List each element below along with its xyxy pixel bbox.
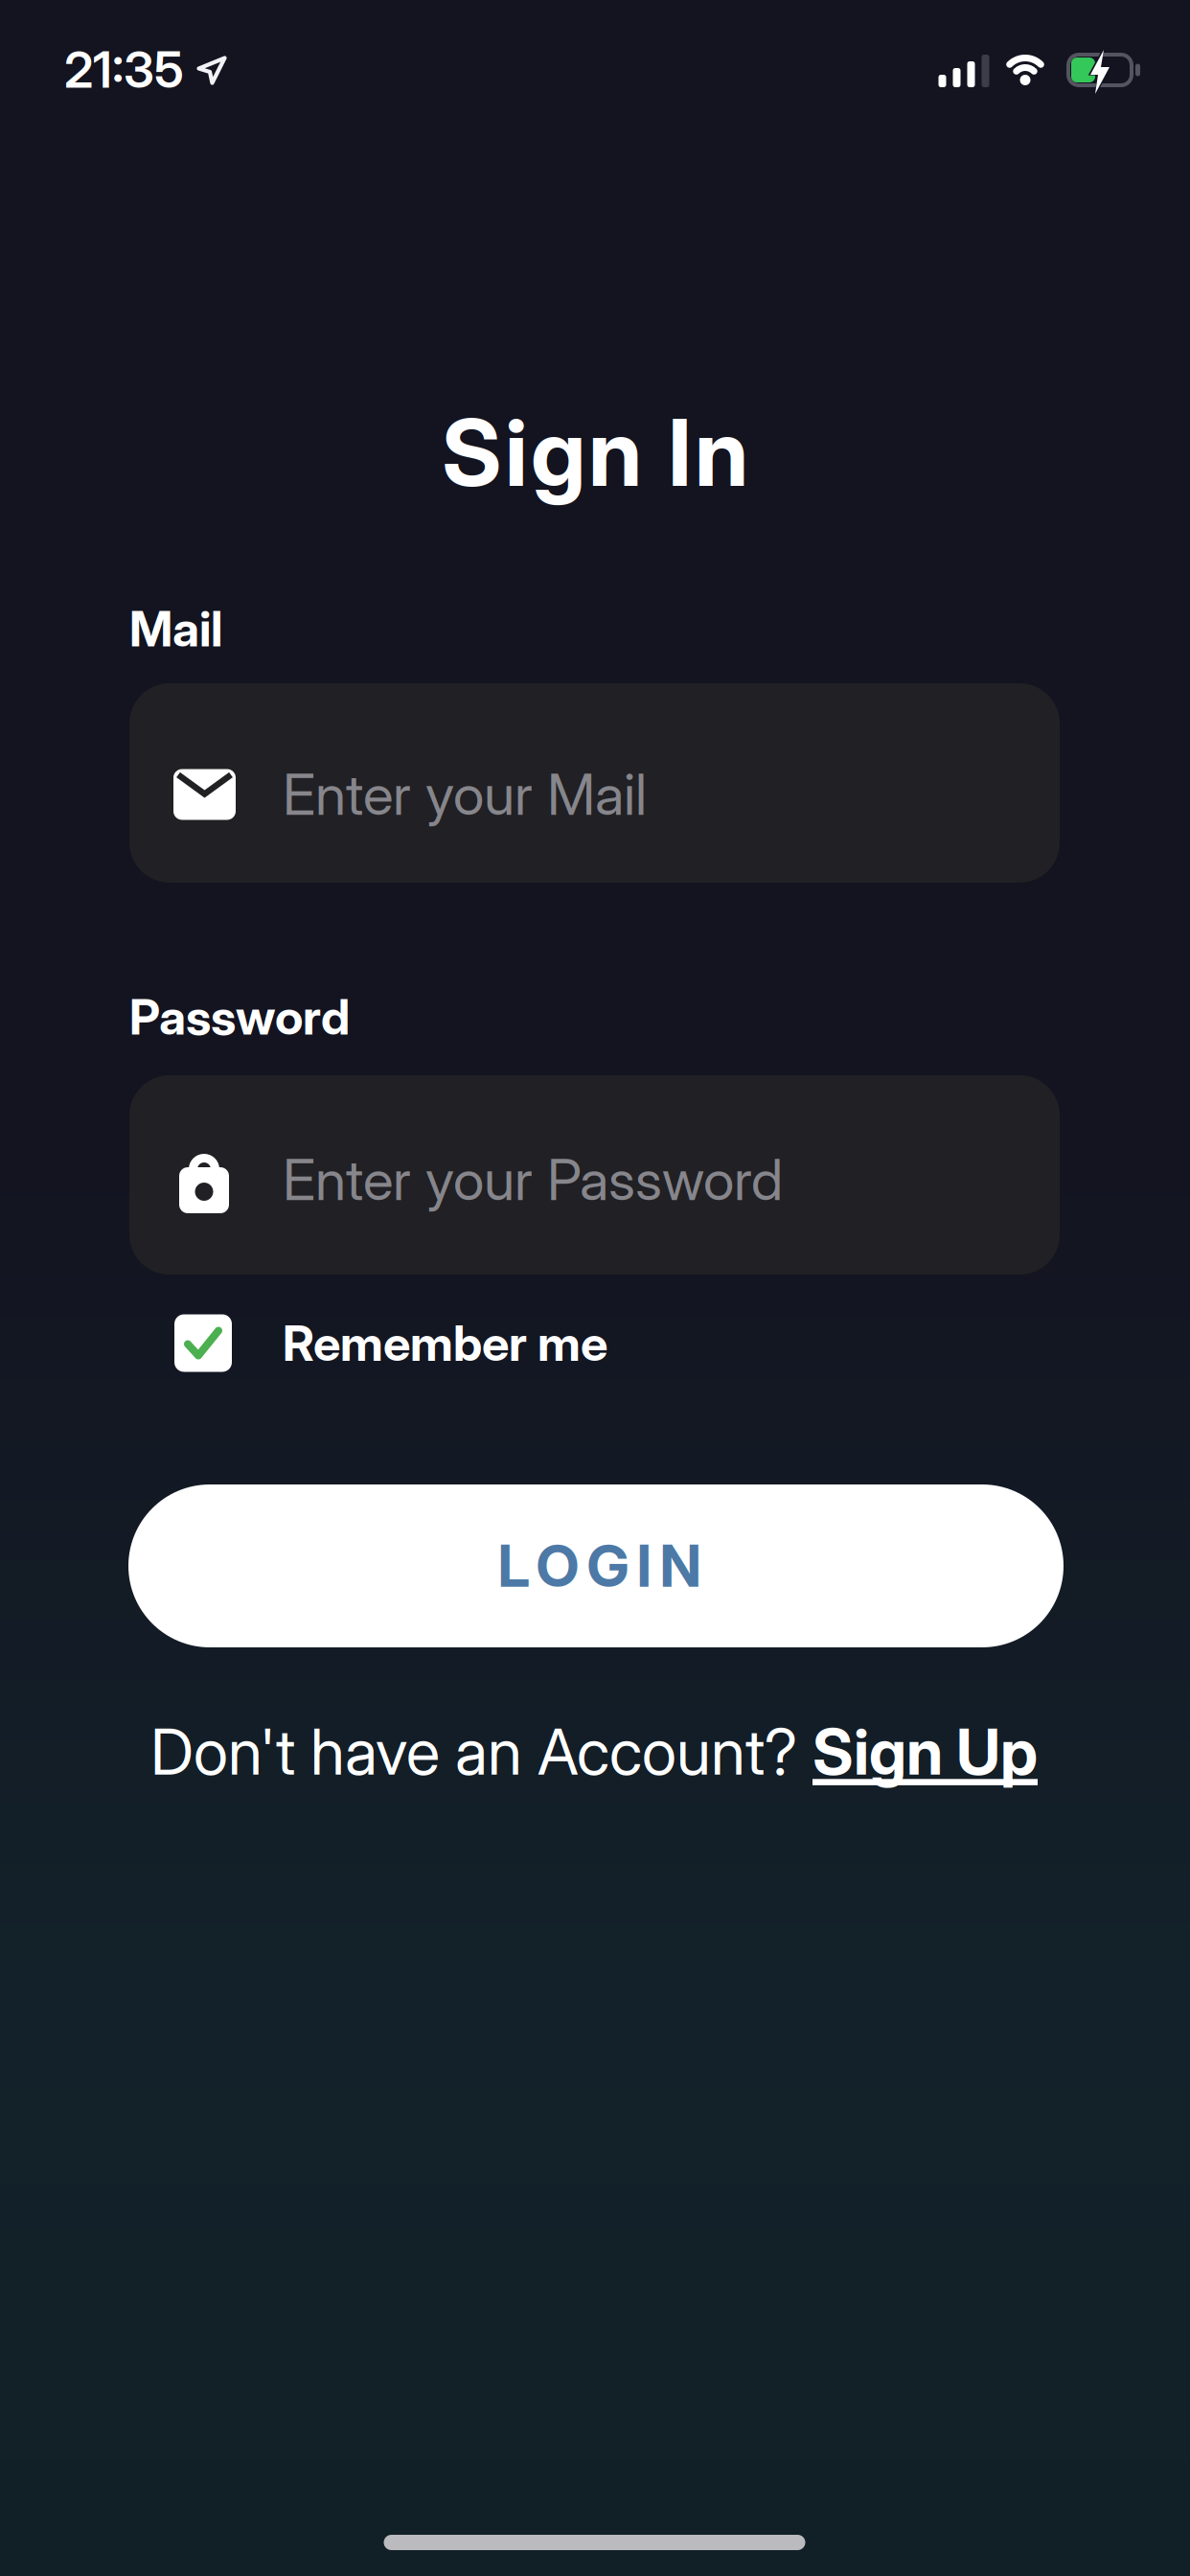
button[interactable]: Sign Up [812, 1715, 1038, 1789]
button[interactable]: Remember me [174, 1314, 845, 1372]
staticText: LOGIN [498, 1532, 702, 1600]
staticText: Password [129, 988, 350, 1045]
textField[interactable]: Enter your Mail [129, 683, 1060, 883]
staticText: Enter your Mail [283, 761, 647, 828]
secureTextField[interactable]: Enter your Password [129, 1075, 1060, 1275]
staticText: Sign Up [812, 1715, 1038, 1789]
staticText: Enter your Password [283, 1147, 783, 1213]
staticText: Mail [129, 600, 222, 657]
staticText: Remember me [283, 1314, 607, 1372]
staticText: Don't have an Account? [150, 1715, 812, 1789]
staticText: Sign In [442, 398, 748, 507]
button[interactable]: LOGIN [128, 1484, 1064, 1647]
staticText: 21:35 [64, 40, 184, 99]
